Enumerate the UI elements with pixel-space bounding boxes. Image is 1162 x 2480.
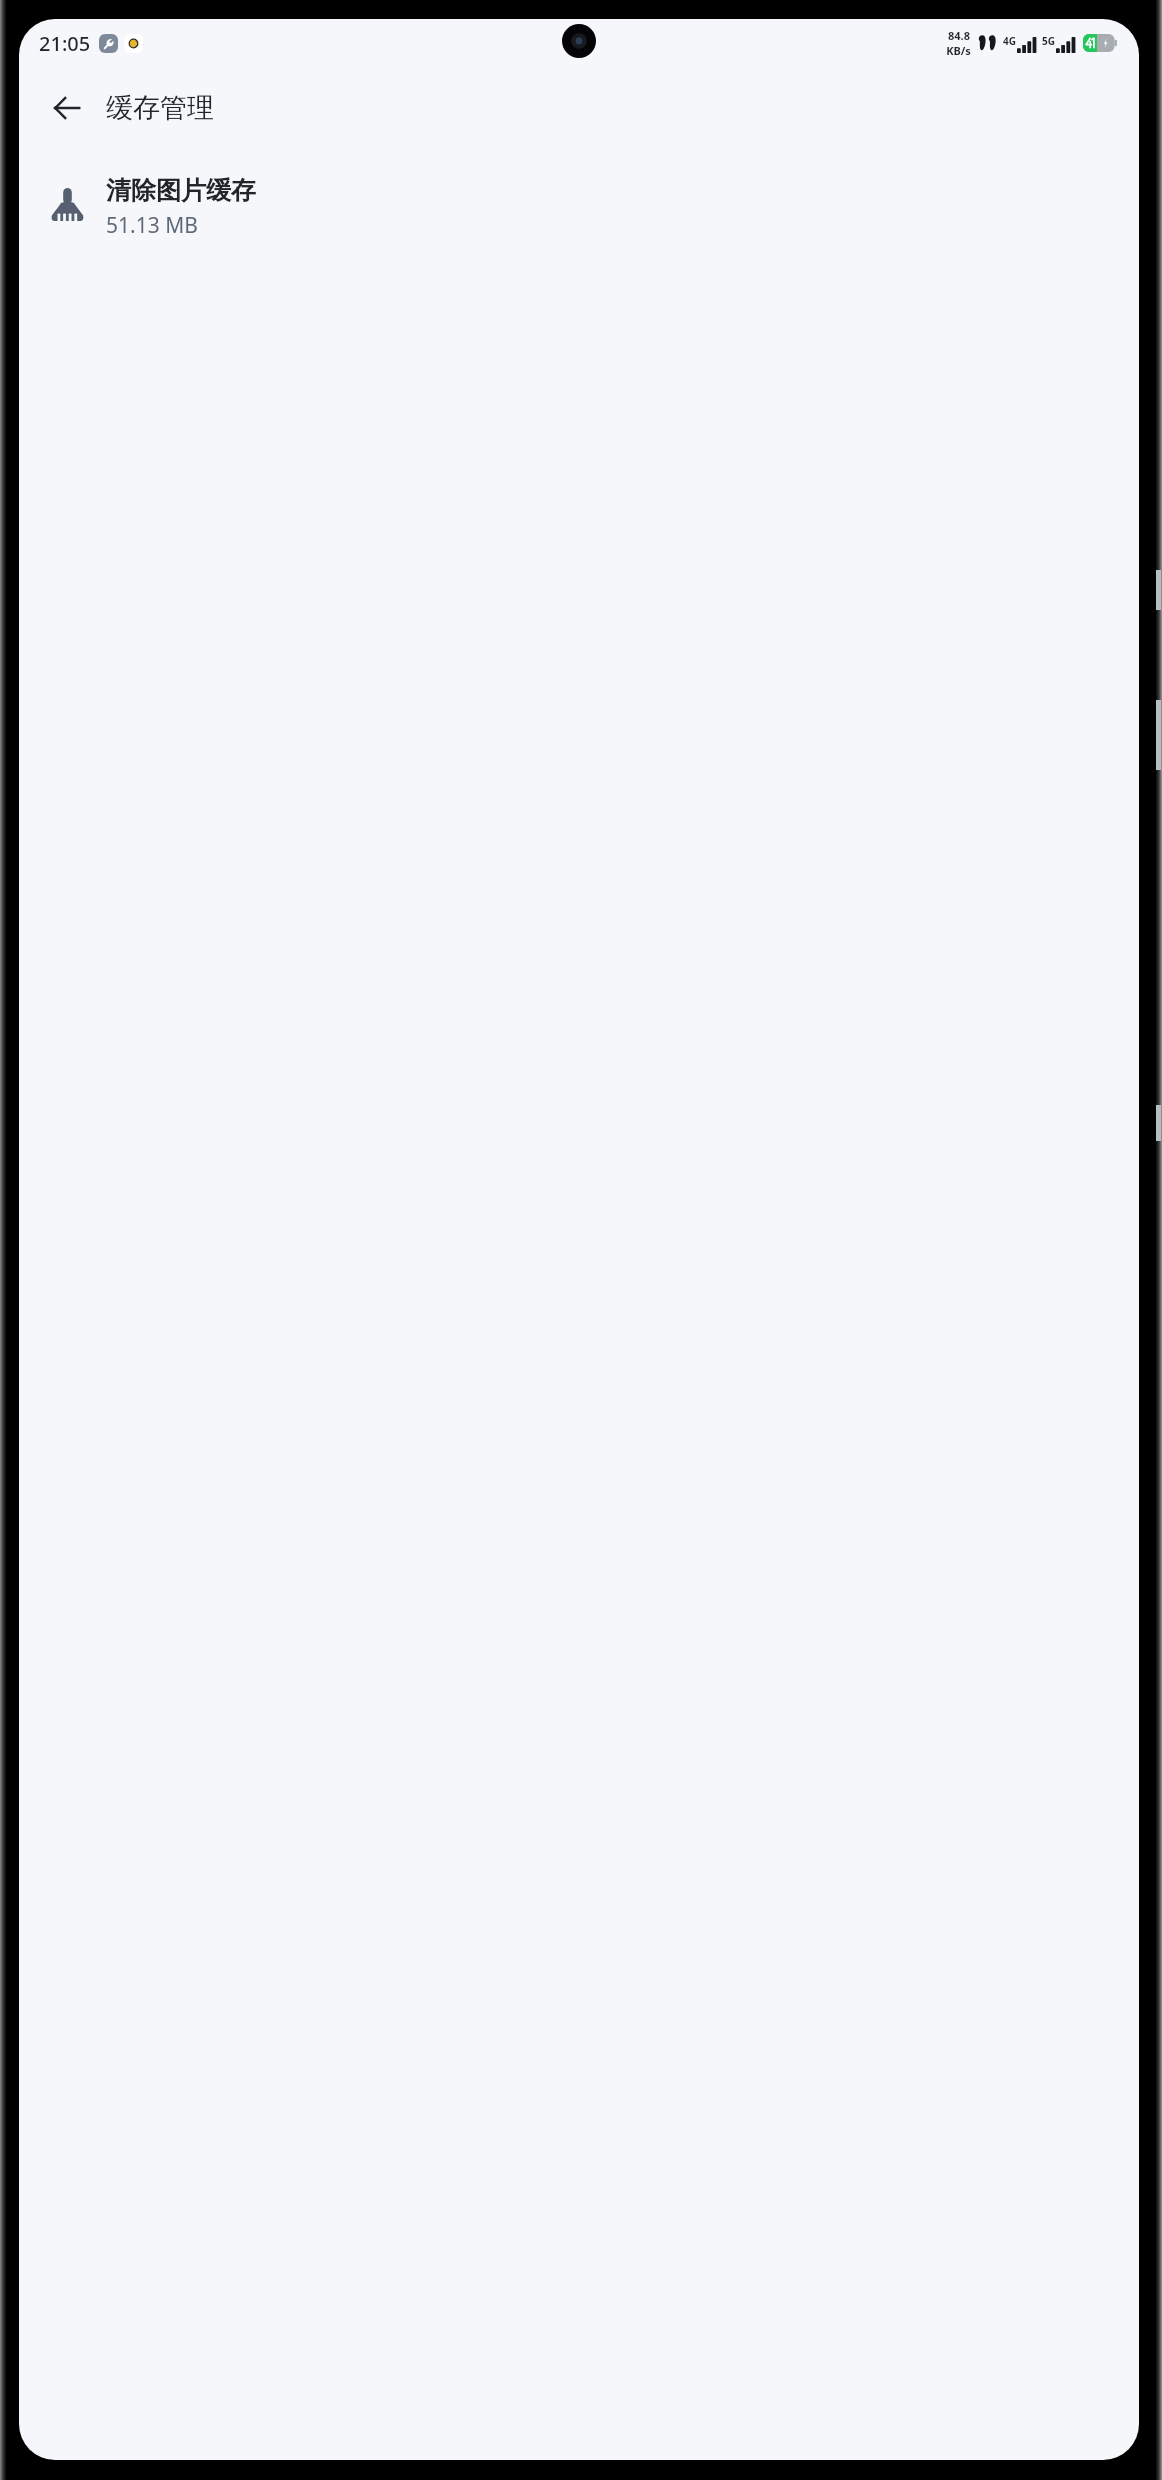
staticText: 缓存管理: [106, 91, 214, 125]
staticText: 清除图片缓存: [106, 175, 256, 206]
button[interactable]: Back: [39, 80, 95, 136]
staticText: 5G: [1042, 34, 1055, 48]
staticText: 51.13 MB: [106, 211, 198, 240]
staticText: 4G: [1003, 34, 1016, 48]
staticText: KB/s: [946, 43, 971, 58]
staticText: 84.8: [948, 28, 970, 43]
button[interactable]: 清除图片缓存: [19, 149, 1139, 265]
staticText: 21:05: [39, 30, 91, 57]
